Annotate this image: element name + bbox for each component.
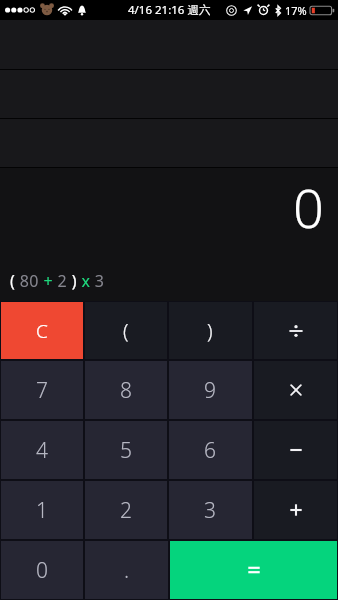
staticText: ): [207, 317, 214, 344]
button[interactable]: Multiply: [254, 361, 337, 419]
staticText: ( 80 + 2 ) x 3: [10, 270, 105, 292]
staticText: 0: [36, 556, 49, 585]
button[interactable]: 4: [1, 421, 83, 479]
button[interactable]: Subtract: [254, 421, 337, 479]
button[interactable]: 9: [169, 361, 252, 419]
button[interactable]: C: [1, 302, 83, 359]
button[interactable]: Equals: [170, 541, 337, 599]
staticText: .: [124, 556, 130, 585]
button[interactable]: 6: [169, 421, 252, 479]
button[interactable]: Divide: [254, 302, 337, 359]
staticText: 7: [36, 376, 49, 405]
staticText: 8: [120, 376, 133, 405]
staticText: 17%: [285, 3, 307, 18]
button[interactable]: 8: [85, 361, 167, 419]
staticText: 2: [120, 496, 133, 525]
button[interactable]: 0: [1, 541, 83, 599]
staticText: 9: [204, 376, 217, 405]
button[interactable]: 2: [85, 481, 167, 539]
button[interactable]: Add: [254, 481, 337, 539]
staticText: 3: [204, 496, 217, 525]
staticText: C: [36, 318, 49, 344]
button[interactable]: .: [85, 541, 168, 599]
staticText: (: [123, 317, 130, 344]
button[interactable]: 1: [1, 481, 83, 539]
button[interactable]: 5: [85, 421, 167, 479]
staticText: 0: [293, 170, 324, 244]
staticText: 6: [204, 436, 217, 465]
staticText: 5: [120, 436, 133, 465]
staticText: 4/16 21:16 週六: [128, 2, 211, 18]
button[interactable]: (: [85, 302, 167, 359]
button[interactable]: 7: [1, 361, 83, 419]
button[interactable]: ): [169, 302, 252, 359]
staticText: 4: [36, 436, 49, 465]
button[interactable]: 3: [169, 481, 252, 539]
staticText: 1: [36, 496, 49, 525]
